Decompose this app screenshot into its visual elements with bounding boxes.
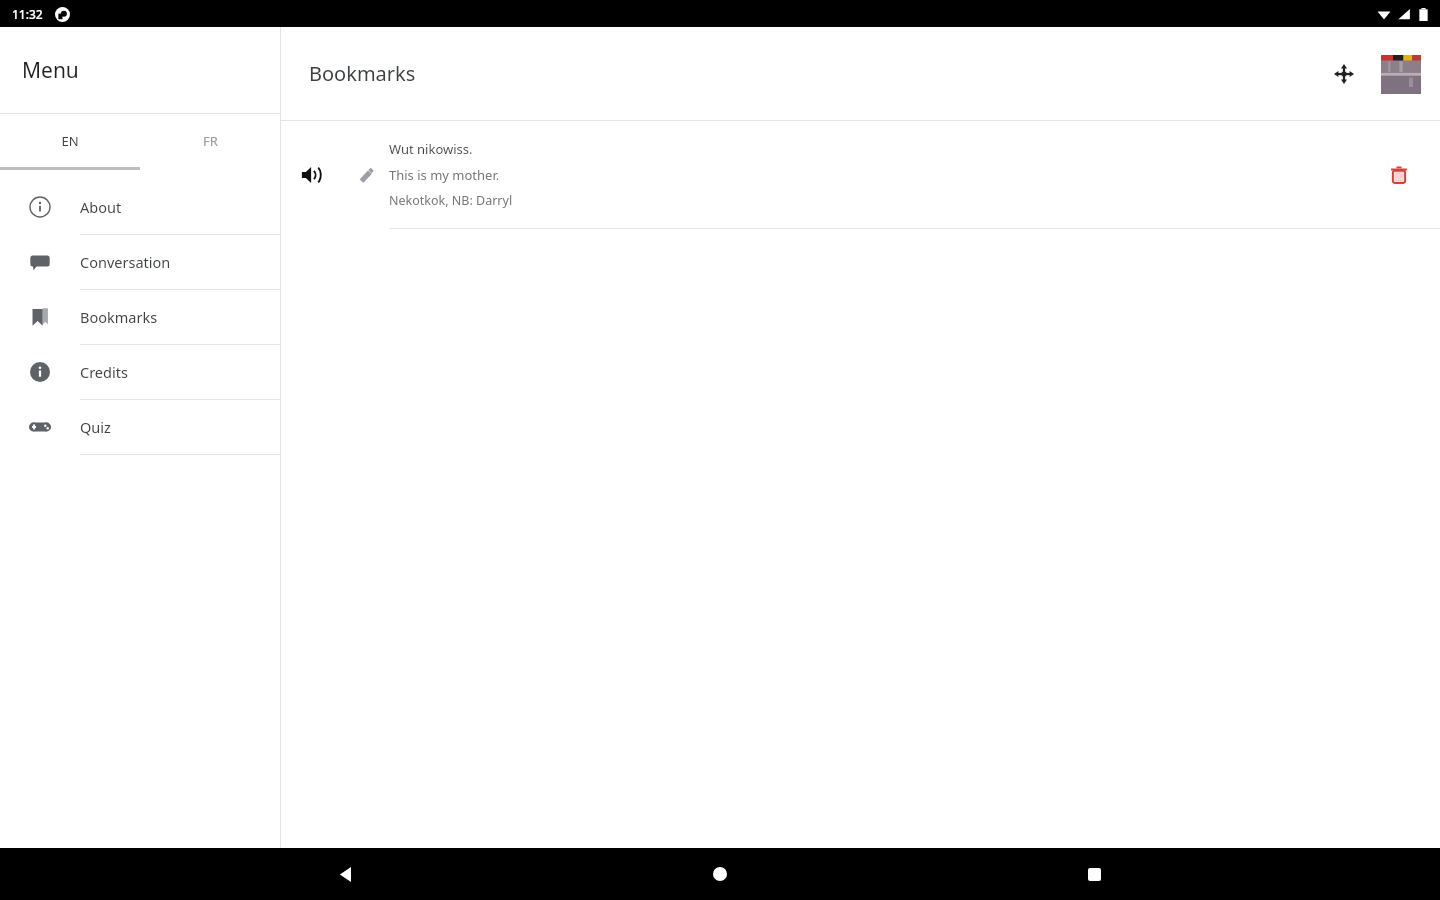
button[interactable]: Move <box>1324 54 1364 94</box>
staticText: 11:32 <box>12 6 43 22</box>
button[interactable]: Recent apps <box>1066 848 1122 900</box>
button[interactable]: Delete bookmark <box>1358 121 1440 228</box>
staticText: Bookmarks <box>80 307 158 327</box>
staticText: EN <box>61 132 79 150</box>
staticText: Conversation <box>80 252 171 272</box>
button[interactable]: Back <box>318 848 374 900</box>
button[interactable]: Home <box>692 848 748 900</box>
staticText: Credits <box>80 362 128 382</box>
staticText: FR <box>203 132 218 150</box>
button[interactable]: Play audio <box>281 121 343 228</box>
staticText: Bookmarks <box>309 60 416 87</box>
button[interactable]: Quiz <box>0 400 280 454</box>
button[interactable]: Conversation <box>0 235 280 289</box>
button[interactable]: Bookmarks <box>0 290 280 344</box>
button[interactable]: FR <box>140 114 280 167</box>
button[interactable]: About <box>0 180 280 234</box>
button[interactable]: EN <box>0 114 140 167</box>
staticText: About <box>80 197 122 217</box>
button[interactable]: Edit note <box>343 121 389 228</box>
staticText: Menu <box>22 56 79 85</box>
button[interactable]: Play audio <box>281 121 1440 228</box>
staticText: Wut nikowiss. <box>389 140 473 158</box>
staticText: Nekotkok, NB: Darryl <box>389 192 513 209</box>
staticText: This is my mother. <box>389 166 500 184</box>
staticText: Quiz <box>80 417 111 437</box>
button[interactable]: Profile image <box>1380 54 1422 94</box>
button[interactable]: Credits <box>0 345 280 399</box>
